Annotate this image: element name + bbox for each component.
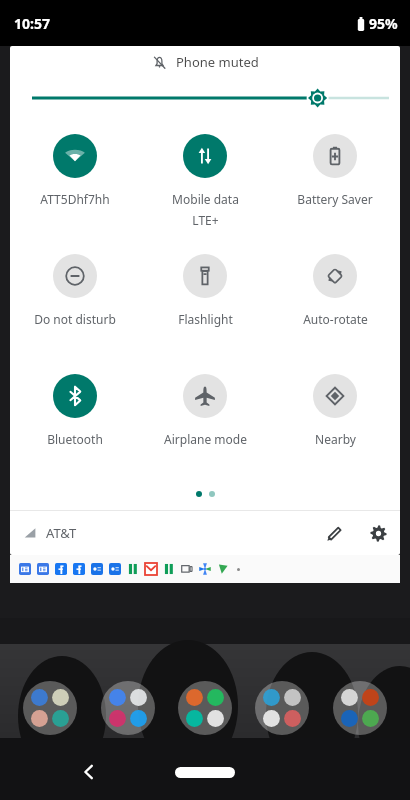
staticText: Airplane mode [164, 431, 247, 447]
button[interactable]: ATT5Dhf7hh [10, 118, 140, 238]
button[interactable]: Auto-rotate [270, 238, 400, 358]
button[interactable]: AT&T [10, 516, 85, 550]
button[interactable]: Airplane mode [140, 358, 270, 478]
staticText: 95% [369, 14, 398, 33]
button[interactable]: Settings [356, 511, 400, 555]
staticText: Mobile data [172, 191, 239, 207]
button[interactable]: Edit tiles [312, 511, 356, 555]
staticText: Bluetooth [47, 431, 103, 447]
staticText: ATT5Dhf7hh [40, 191, 110, 207]
button[interactable]: Home [170, 759, 240, 785]
button[interactable]: Nearby [270, 358, 400, 478]
staticText: Nearby [315, 431, 356, 447]
button[interactable]: Back [72, 755, 106, 789]
button[interactable]: App folder [101, 681, 155, 735]
button[interactable]: App folder [255, 681, 309, 735]
button[interactable] [10, 78, 400, 118]
button[interactable]: Do not disturb [10, 238, 140, 358]
staticText: Flashlight [178, 311, 233, 327]
staticText: LTE+ [192, 212, 219, 228]
button[interactable]: App folder [178, 681, 232, 735]
staticText: AT&T [46, 524, 77, 542]
button[interactable]: Mobile data [140, 118, 270, 238]
button[interactable]: Battery Saver [270, 118, 400, 238]
button[interactable]: Flashlight [140, 238, 270, 358]
button[interactable]: Bluetooth [10, 358, 140, 478]
staticText: Do not disturb [34, 311, 116, 327]
button[interactable]: App folder [23, 681, 77, 735]
staticText: Auto-rotate [303, 311, 368, 327]
staticText: Phone muted [176, 53, 259, 71]
button[interactable]: App folder [333, 681, 387, 735]
staticText: Battery Saver [297, 191, 373, 207]
staticText: 10:57 [14, 14, 50, 33]
